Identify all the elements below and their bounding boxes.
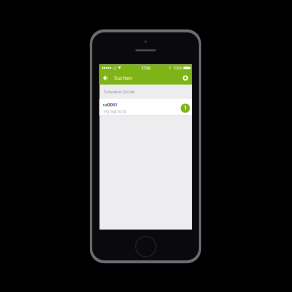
button[interactable]: Suchen — [99, 72, 132, 84]
staticText: 192.168.10.10 — [103, 109, 126, 114]
staticText: Gefundene Geräte — [103, 89, 134, 94]
staticText: Suchen — [114, 74, 132, 82]
button[interactable]: Aktualisieren — [182, 72, 192, 84]
staticText: 17:06 — [141, 65, 150, 70]
staticText: o2 — [112, 65, 116, 70]
staticText: 100% — [173, 65, 182, 70]
button[interactable]: txODS1 — [99, 99, 192, 115]
staticText: txODS1 — [103, 102, 117, 107]
